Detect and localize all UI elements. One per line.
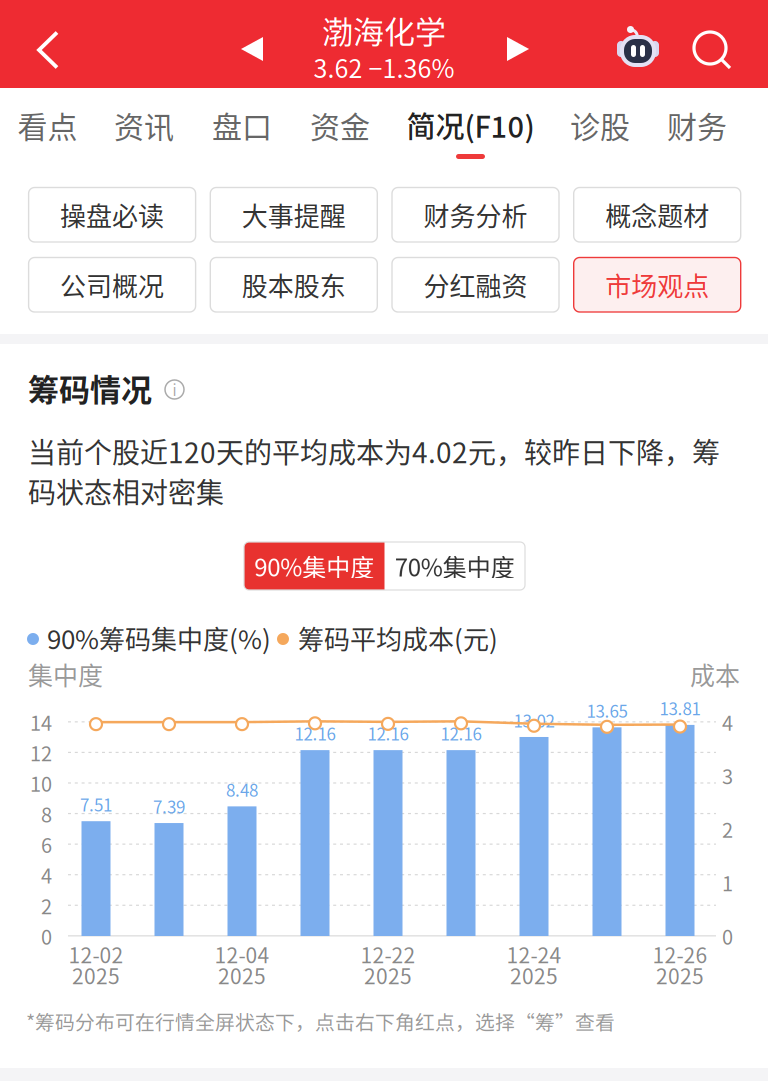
staticText: 当前个股近120天的平均成本为4.02元，较昨日下降，筹	[28, 431, 720, 471]
staticText: 12.16	[367, 721, 408, 745]
staticText: 7.39	[153, 794, 185, 818]
staticText: 4	[722, 707, 733, 736]
staticText: 成本	[690, 656, 740, 692]
staticText: 0	[722, 921, 733, 950]
staticText: 资讯	[114, 103, 174, 147]
button[interactable]: 操盘必读	[29, 187, 196, 242]
staticText: 90%筹码集中度(%)	[47, 619, 271, 657]
button[interactable]: Previous stock	[0, 0, 62, 48]
staticText: 12-26	[652, 939, 707, 969]
button[interactable]: 90%集中度	[244, 542, 384, 590]
staticText: 70%集中度	[395, 549, 515, 583]
staticText: 资金	[310, 103, 370, 147]
staticText: 操盘必读	[60, 196, 164, 233]
staticText: 12	[30, 738, 52, 767]
button[interactable]: 市场观点	[574, 257, 741, 312]
button[interactable]: 财务分析	[392, 187, 559, 242]
button[interactable]: AI assistant	[0, 0, 66, 52]
staticText: 2025	[510, 960, 558, 990]
staticText: 2025	[72, 960, 120, 990]
staticText: 市场观点	[605, 266, 709, 303]
staticText: 看点	[17, 103, 77, 147]
button[interactable]: 财务	[0, 0, 96, 78]
staticText: 诊股	[570, 103, 630, 147]
button[interactable]: 70%集中度	[244, 542, 384, 590]
staticText: 12-24	[506, 939, 561, 969]
staticText: 2025	[218, 960, 266, 990]
button[interactable]: 盘口	[0, 0, 96, 78]
button[interactable]: 股本股东	[210, 257, 377, 312]
staticText: i	[172, 379, 176, 400]
button[interactable]: 资讯	[0, 0, 96, 78]
button[interactable]: 大事提醒	[210, 187, 377, 242]
staticText: 14	[30, 707, 52, 736]
staticText: 12-02	[68, 939, 123, 969]
staticText: 2	[722, 814, 733, 843]
staticText: 13.81	[659, 696, 700, 720]
staticText: 7.51	[80, 792, 112, 816]
button[interactable]: Back	[0, 0, 72, 42]
staticText: 4	[41, 860, 52, 889]
staticText: 10	[30, 769, 52, 798]
staticText: 筹码情况	[28, 366, 152, 410]
staticText: 概念题材	[605, 196, 709, 233]
staticText: 股本股东	[242, 266, 346, 303]
staticText: 1	[722, 868, 733, 897]
staticText: 筹码平均成本(元)	[298, 619, 498, 657]
button[interactable]: 诊股	[0, 0, 96, 78]
button[interactable]: Search	[0, 0, 72, 52]
staticText: 8	[41, 799, 52, 828]
staticText: 90%集中度	[254, 549, 374, 583]
staticText: 13.65	[586, 698, 627, 723]
button[interactable]: 资金	[0, 0, 96, 78]
button[interactable]: Next stock	[0, 0, 62, 48]
staticText: 12.16	[294, 721, 335, 745]
staticText: 集中度	[28, 656, 103, 692]
staticText: 大事提醒	[242, 196, 346, 233]
staticText: 8.48	[226, 777, 258, 802]
staticText: 盘口	[212, 103, 272, 147]
staticText: 13.02	[513, 708, 554, 732]
staticText: *筹码分布可在行情全屏状态下，点击右下角红点，选择“筹”查看	[26, 1007, 615, 1035]
staticText: 渤海化学	[322, 8, 446, 52]
button[interactable]: 概念题材	[574, 187, 741, 242]
button[interactable]: 简况(F10)	[0, 0, 150, 78]
staticText: 12-22	[360, 939, 415, 969]
staticText: 12.16	[440, 721, 481, 745]
staticText: 3	[722, 761, 733, 790]
staticText: 公司概况	[60, 266, 164, 303]
button[interactable]: 公司概况	[29, 257, 196, 312]
button[interactable]: 看点	[0, 0, 96, 78]
button[interactable]: 分红融资	[392, 257, 559, 312]
staticText: 码状态相对密集	[28, 471, 224, 511]
staticText: 0	[41, 921, 52, 950]
staticText: 财务	[667, 103, 727, 147]
staticText: 2025	[656, 960, 704, 990]
staticText: 简况(F10)	[406, 104, 534, 146]
staticText: 财务分析	[423, 196, 527, 233]
staticText: 12-04	[214, 939, 269, 969]
staticText: 3.62 −1.36%	[313, 49, 454, 85]
staticText: 2	[41, 891, 52, 920]
staticText: 2025	[364, 960, 412, 990]
staticText: 6	[41, 830, 52, 859]
staticText: 分红融资	[423, 266, 527, 303]
